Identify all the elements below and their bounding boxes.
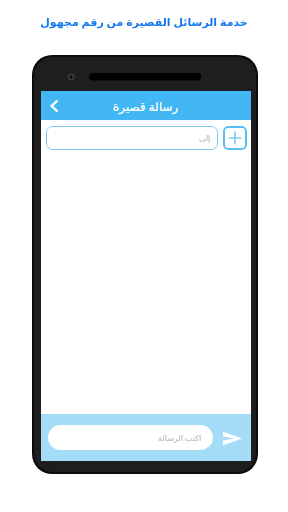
staticText: اكتب الرسالة — [158, 432, 202, 443]
button[interactable]: Back — [41, 93, 67, 119]
staticText: إلى — [199, 134, 211, 143]
staticText: رسالة قصيرة — [113, 98, 179, 114]
button[interactable]: اكتب الرسالة — [48, 425, 213, 450]
staticText: خدمة الرسائل القصيرة من رقم مجهول — [40, 14, 248, 29]
button[interactable]: Add recipient — [223, 126, 247, 150]
button[interactable]: إلى — [46, 126, 218, 150]
button[interactable]: Send — [217, 423, 247, 453]
